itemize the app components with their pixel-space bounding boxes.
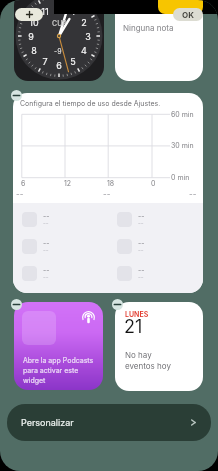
- staticText: --: [189, 189, 197, 199]
- staticText: 4: [81, 45, 87, 56]
- staticText: -9: [54, 47, 62, 55]
- staticText: 6: [56, 60, 62, 71]
- button[interactable]: --: [117, 239, 187, 259]
- button[interactable]: Remove widget: [11, 299, 22, 310]
- staticText: 30 min: [171, 141, 194, 149]
- button[interactable]: Abre la app Podcasts para activar este w…: [14, 302, 103, 390]
- staticText: No hay eventos hoy: [125, 350, 171, 371]
- staticText: --: [138, 266, 145, 274]
- button[interactable]: Remove widget: [112, 299, 123, 310]
- staticText: --: [43, 219, 49, 226]
- staticText: --: [138, 212, 145, 220]
- button[interactable]: Ninguna nota: [115, 0, 203, 81]
- staticText: 6: [21, 179, 26, 187]
- staticText: --: [43, 266, 50, 274]
- staticText: 3: [85, 31, 91, 42]
- staticText: 2: [81, 17, 87, 28]
- button[interactable]: --: [117, 212, 187, 232]
- button[interactable]: OK: [173, 8, 203, 21]
- staticText: 0: [151, 179, 156, 187]
- staticText: Configura el tiempo de uso desde Ajustes…: [20, 99, 161, 107]
- staticText: 5: [70, 56, 76, 67]
- button[interactable]: Remove widget: [11, 90, 22, 101]
- button[interactable]: --: [117, 266, 187, 286]
- staticText: 12: [64, 179, 72, 187]
- staticText: 60 min: [171, 110, 194, 118]
- staticText: 11: [41, 6, 49, 17]
- staticText: 21: [124, 316, 143, 338]
- staticText: --: [43, 273, 49, 280]
- staticText: 8: [31, 45, 37, 56]
- staticText: 10: [29, 17, 39, 28]
- button[interactable]: Configura el tiempo de uso desde Ajustes…: [13, 93, 203, 293]
- staticText: Ninguna nota: [123, 23, 174, 33]
- button[interactable]: Add widget: [15, 8, 43, 21]
- button[interactable]: LUNES: [115, 302, 203, 391]
- staticText: CUP: [52, 19, 67, 27]
- staticText: --: [138, 273, 144, 280]
- button[interactable]: --: [22, 239, 92, 259]
- staticText: 7: [42, 56, 48, 67]
- button[interactable]: --: [22, 266, 92, 286]
- staticText: --: [138, 219, 144, 226]
- staticText: Personalizar: [21, 417, 74, 428]
- staticText: 0 min: [171, 173, 190, 181]
- button[interactable]: 12: [14, 0, 104, 81]
- staticText: LUNES: [125, 310, 149, 318]
- staticText: 9: [28, 31, 34, 42]
- staticText: 18: [107, 179, 115, 187]
- staticText: --: [138, 239, 145, 247]
- button[interactable]: Personalizar: [7, 404, 211, 441]
- staticText: --: [43, 239, 50, 247]
- staticText: --: [43, 212, 50, 220]
- staticText: --: [138, 246, 144, 253]
- staticText: --: [43, 246, 49, 253]
- staticText: --: [16, 189, 24, 199]
- button[interactable]: --: [22, 212, 92, 232]
- staticText: Abre la app Podcasts para activar este w…: [23, 356, 94, 384]
- staticText: 1: [71, 6, 75, 17]
- staticText: OK: [182, 10, 194, 20]
- staticText: --: [103, 189, 111, 199]
